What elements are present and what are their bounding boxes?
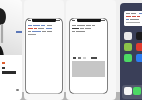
button[interactable]: App icon [136, 54, 142, 62]
button[interactable]: App icon [133, 87, 141, 95]
button[interactable]: App icon [136, 32, 142, 40]
button[interactable]: App icon [136, 43, 142, 51]
button[interactable]: App icon [124, 54, 132, 62]
button[interactable] [24, 0, 64, 100]
button[interactable] [0, 0, 22, 100]
button[interactable]: App icon [124, 87, 132, 95]
button[interactable]: App icon [124, 32, 132, 40]
button[interactable]: App icon [124, 43, 132, 51]
button[interactable] [66, 0, 116, 100]
button[interactable]: App icon [120, 3, 142, 100]
